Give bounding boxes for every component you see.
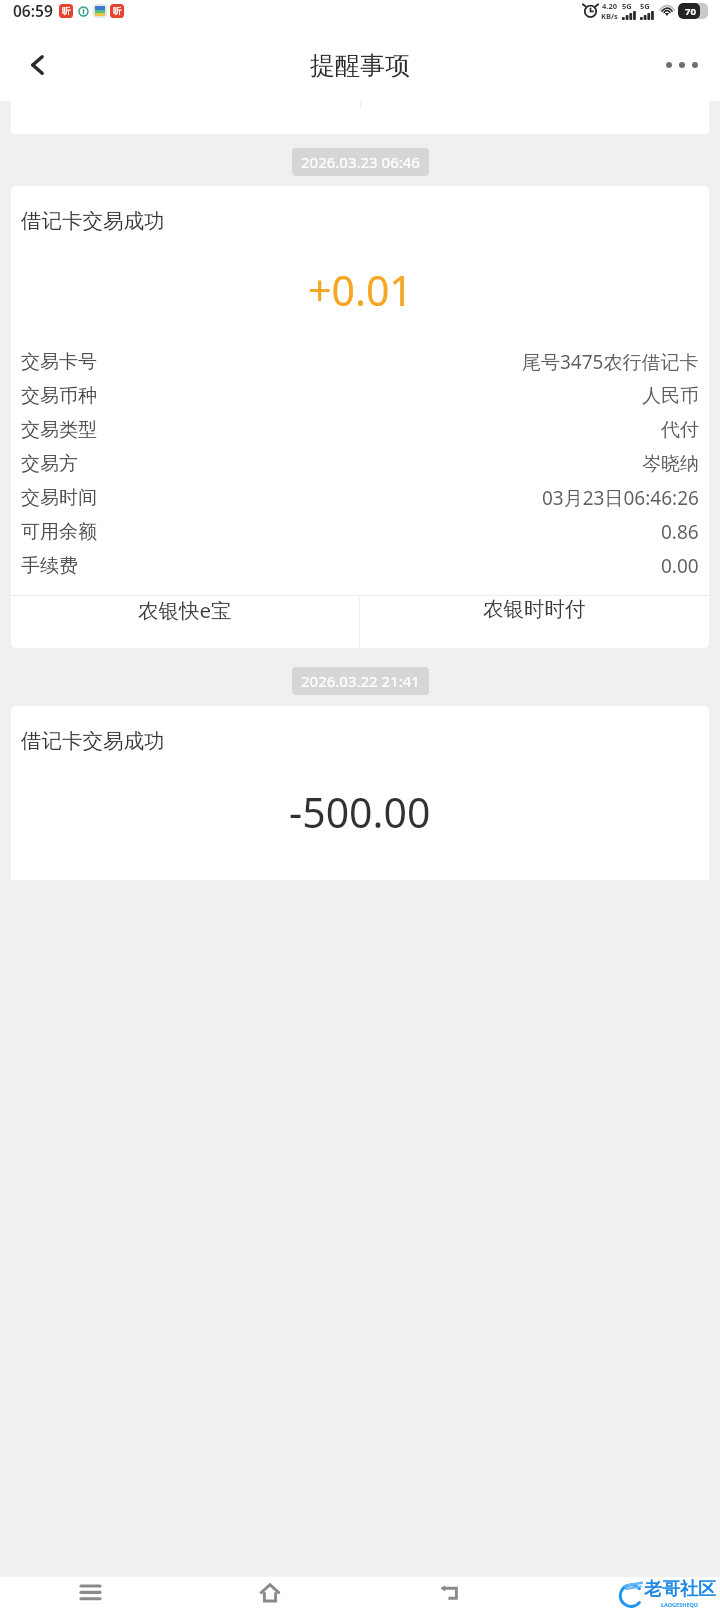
staticText: 2026.03.23 06:46 <box>301 152 420 172</box>
staticText: 手续费 <box>21 554 78 578</box>
staticText: 2026.03.22 21:41 <box>301 671 420 691</box>
staticText: 借记卡交易成功 <box>21 208 165 234</box>
button[interactable]: 农银快e宝 <box>11 596 359 624</box>
staticText: -500.00 <box>289 784 431 840</box>
button[interactable]: 农银时时付 <box>360 596 709 622</box>
button[interactable]: Back <box>427 1577 473 1608</box>
staticText: 0.00 <box>661 553 699 579</box>
button[interactable]: Home <box>247 1577 293 1608</box>
button[interactable]: Recent apps <box>67 1577 113 1608</box>
staticText: KB/s <box>601 11 618 21</box>
staticText: 03月23日06:46:26 <box>542 485 699 511</box>
staticText: 06:59 <box>13 0 53 21</box>
button[interactable]: 借记卡交易成功 <box>11 706 709 880</box>
button[interactable]: Back <box>14 41 62 89</box>
staticText: 交易方 <box>21 452 78 476</box>
button[interactable]: More options <box>656 39 708 91</box>
staticText: 人民币 <box>642 384 699 408</box>
staticText: 5G <box>622 1 632 11</box>
staticText: 4.20 <box>602 1 617 11</box>
staticText: 0.86 <box>661 519 699 545</box>
staticText: +0.01 <box>308 262 413 318</box>
staticText: 交易卡号 <box>21 350 97 374</box>
staticText: 听 <box>113 6 122 17</box>
staticText: 可用余额 <box>21 520 97 544</box>
staticText: 岑晓纳 <box>642 452 699 476</box>
staticText: LAOGESHEQU <box>661 1601 699 1608</box>
button[interactable]: 借记卡交易成功 <box>11 186 709 648</box>
staticText: 农银快e宝 <box>138 596 232 624</box>
staticText: 交易币种 <box>21 384 97 408</box>
staticText: 借记卡交易成功 <box>21 728 165 754</box>
staticText: 5G <box>640 1 650 11</box>
staticText: 交易类型 <box>21 418 97 442</box>
staticText: 农银时时付 <box>483 596 586 622</box>
staticText: 老哥社区 <box>644 1578 716 1601</box>
staticText: 听 <box>62 6 71 17</box>
staticText: 尾号3475农行借记卡 <box>522 349 699 375</box>
staticText: 代付 <box>661 418 699 442</box>
staticText: 70 <box>685 5 696 18</box>
staticText: 交易时间 <box>21 486 97 510</box>
staticText: 提醒事项 <box>310 50 410 81</box>
